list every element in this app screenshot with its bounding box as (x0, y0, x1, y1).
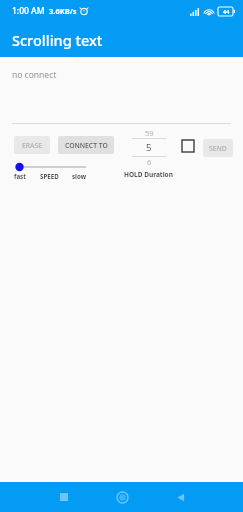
staticText: 44 (223, 8, 230, 15)
staticText: CONNECT TO (65, 141, 108, 150)
button[interactable]: Back (162, 482, 198, 512)
staticText: SEND (209, 144, 227, 153)
staticText: slow (72, 172, 86, 180)
button[interactable]: Recents (46, 482, 82, 512)
button[interactable]: 59 (129, 128, 169, 167)
button[interactable]: CONNECT TO (58, 136, 114, 154)
staticText: ERASE (22, 141, 43, 150)
button[interactable]: ERASE (14, 136, 50, 154)
staticText: no connect (12, 69, 57, 81)
staticText: 3.6KB/s (49, 6, 77, 16)
staticText: HOLD Duration (124, 170, 173, 179)
staticText: 6 (147, 157, 152, 167)
staticText: 1:00 AM (12, 5, 45, 17)
button[interactable]: SEND (203, 139, 233, 157)
staticText: Scrolling text (12, 30, 103, 50)
staticText: SPEED (40, 172, 59, 180)
button[interactable] (14, 162, 86, 172)
button[interactable]: Home (104, 482, 140, 512)
button[interactable]: Toggle option (181, 139, 195, 153)
staticText: fast (14, 172, 26, 180)
staticText: 59 (145, 128, 154, 138)
staticText: 5 (146, 141, 152, 154)
